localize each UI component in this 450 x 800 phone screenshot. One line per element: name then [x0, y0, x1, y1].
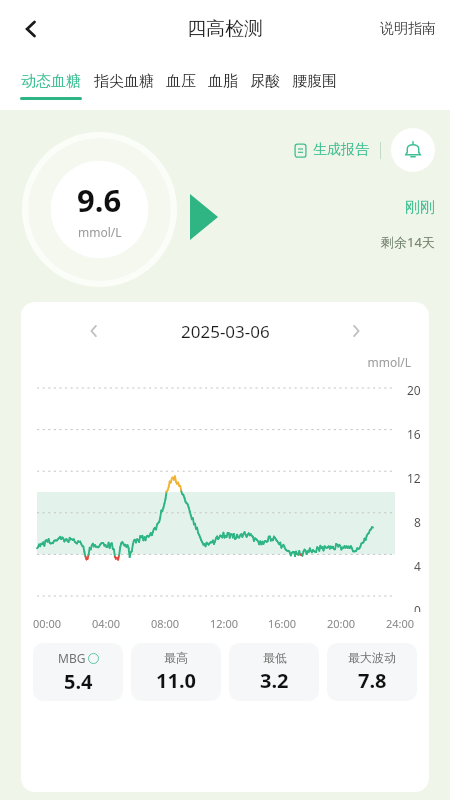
- staticText: 08:00: [151, 616, 180, 631]
- staticText: 动态血糖: [21, 72, 81, 91]
- button[interactable]: 尿酸: [250, 58, 292, 110]
- button[interactable]: 最大波动: [327, 643, 417, 701]
- staticText: 11.0: [156, 667, 196, 694]
- staticText: 00:00: [33, 616, 62, 631]
- button[interactable]: 血压: [166, 58, 208, 110]
- staticText: mmol/L: [21, 354, 411, 370]
- staticText: 血压: [166, 72, 196, 91]
- staticText: 20:00: [327, 616, 356, 631]
- button[interactable]: MBG: [33, 643, 123, 701]
- staticText: 血脂: [208, 72, 238, 91]
- button[interactable]: Next day: [341, 316, 371, 346]
- staticText: 0: [414, 602, 421, 612]
- button[interactable]: 生成报告: [293, 141, 369, 159]
- staticText: 尿酸: [250, 72, 280, 91]
- button[interactable]: 动态血糖: [20, 58, 94, 110]
- staticText: 9.6: [77, 179, 122, 221]
- staticText: 16: [407, 426, 421, 442]
- button[interactable]: 指尖血糖: [94, 58, 166, 110]
- staticText: 刚刚: [405, 198, 435, 217]
- staticText: mmol/L: [78, 224, 122, 240]
- staticText: 3.2: [260, 667, 289, 694]
- staticText: 最高: [164, 650, 188, 665]
- button[interactable]: Back: [10, 8, 52, 50]
- staticText: 12: [407, 470, 421, 486]
- staticText: 最大波动: [348, 650, 396, 665]
- button[interactable]: 血脂: [208, 58, 250, 110]
- staticText: 说明指南: [380, 20, 436, 38]
- staticText: 腰腹围: [292, 72, 337, 91]
- staticText: 12:00: [210, 616, 239, 631]
- staticText: 生成报告: [313, 141, 369, 159]
- button[interactable]: Previous day: [79, 316, 109, 346]
- staticText: 04:00: [92, 616, 121, 631]
- button[interactable]: 最高: [131, 643, 221, 701]
- staticText: 24:00: [386, 616, 415, 631]
- staticText: 四高检测: [187, 17, 263, 41]
- staticText: 剩余14天: [381, 233, 435, 251]
- staticText: 4: [414, 558, 421, 574]
- button[interactable]: 9.6: [22, 132, 177, 287]
- staticText: 指尖血糖: [94, 72, 154, 91]
- button[interactable]: 腰腹围: [292, 58, 349, 110]
- staticText: 8: [414, 514, 421, 530]
- staticText: 7.8: [358, 667, 387, 694]
- button[interactable]: 说明指南: [380, 20, 436, 38]
- button[interactable]: Alerts: [391, 128, 435, 172]
- staticText: 16:00: [268, 616, 297, 631]
- staticText: MBG: [58, 650, 86, 666]
- staticText: 5.4: [64, 668, 93, 695]
- staticText: 2025-03-06: [181, 320, 270, 343]
- staticText: 20: [407, 382, 421, 398]
- button[interactable]: 最低: [229, 643, 319, 701]
- staticText: 最低: [263, 650, 287, 665]
